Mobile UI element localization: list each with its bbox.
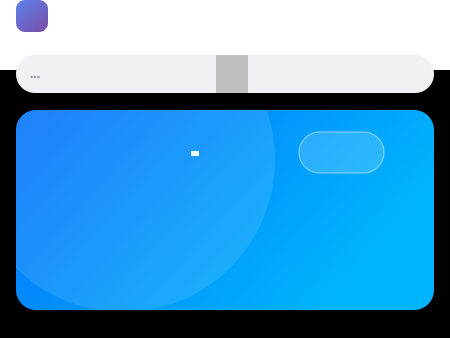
button[interactable]: Get started [16, 110, 434, 310]
button[interactable]: App icon [16, 0, 48, 32]
button[interactable]: Address bar [16, 55, 434, 93]
